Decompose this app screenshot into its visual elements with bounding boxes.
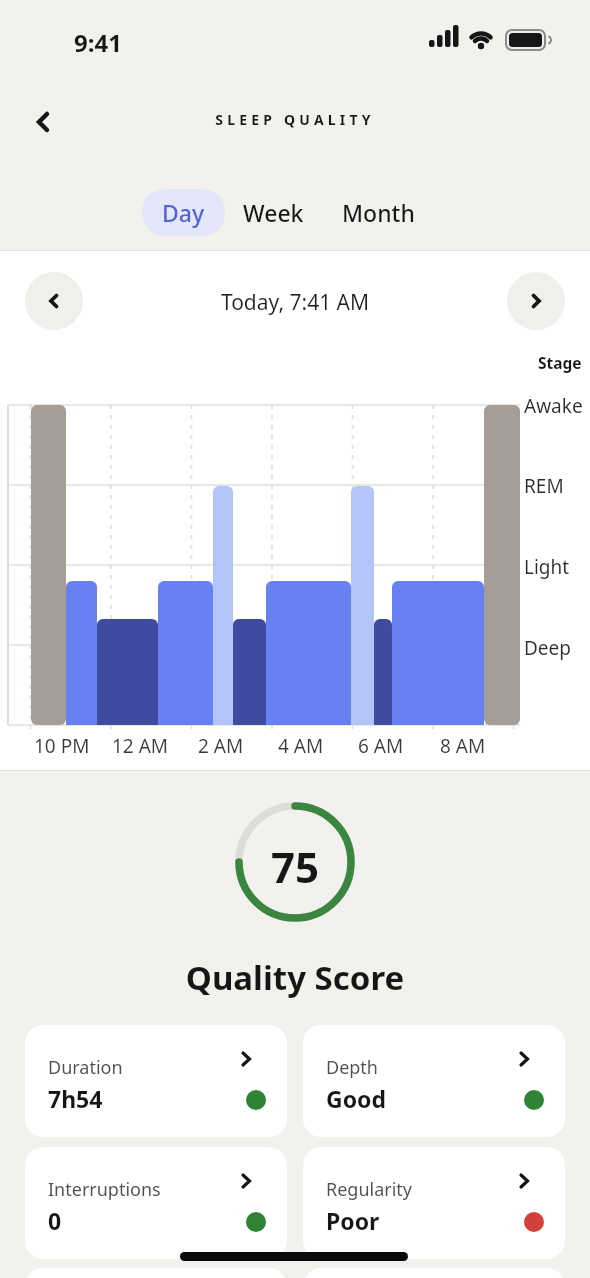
staticText: 6 AM [358, 733, 404, 759]
staticText: Month [342, 197, 415, 228]
button[interactable]: Depth [303, 1025, 565, 1137]
staticText: SLEEP QUALITY [0, 110, 590, 129]
staticText: 2 AM [198, 733, 244, 759]
staticText: 7h54 [48, 1083, 103, 1114]
staticText: Light [524, 554, 570, 580]
staticText: 8 AM [440, 733, 486, 759]
button[interactable]: Duration [25, 1025, 287, 1137]
button[interactable]: Interruptions [25, 1147, 287, 1259]
staticText: Quality Score [0, 955, 590, 1000]
button[interactable]: Regularity [303, 1147, 565, 1259]
button[interactable] [22, 100, 64, 142]
staticText: Poor [326, 1205, 380, 1236]
staticText: Day [162, 197, 205, 228]
staticText: Depth [326, 1055, 378, 1080]
staticText: REM [524, 473, 564, 499]
staticText: 9:41 [74, 26, 122, 59]
staticText: Stage [538, 352, 582, 373]
staticText: Good [326, 1083, 386, 1114]
button[interactable] [25, 272, 83, 330]
button[interactable]: Day [142, 189, 225, 236]
staticText: 75 [0, 838, 590, 895]
button[interactable]: Month [342, 189, 415, 236]
staticText: Deep [524, 635, 571, 661]
staticText: Week [243, 197, 304, 228]
button[interactable]: Week [243, 189, 304, 236]
staticText: 12 AM [112, 733, 169, 759]
staticText: Regularity [326, 1177, 413, 1202]
staticText: 0 [48, 1205, 62, 1236]
staticText: Awake [524, 393, 583, 419]
staticText: Duration [48, 1055, 123, 1080]
staticText: Today, 7:41 AM [0, 288, 590, 317]
staticText: 4 AM [278, 733, 324, 759]
staticText: 10 PM [34, 733, 90, 759]
button[interactable] [507, 272, 565, 330]
staticText: Interruptions [48, 1177, 161, 1202]
